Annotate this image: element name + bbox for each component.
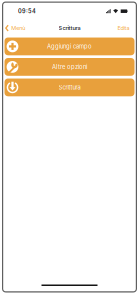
staticText: Menù — [11, 25, 25, 31]
button[interactable]: Aggiungi campo — [4, 37, 134, 55]
staticText: Aggiungi campo — [47, 43, 92, 50]
button[interactable]: Menù — [2, 23, 25, 33]
staticText: Scrittura — [58, 25, 80, 31]
button[interactable]: Altre opzioni — [4, 58, 134, 76]
staticText: Scrittura — [58, 84, 80, 91]
staticText: Edita — [117, 25, 129, 31]
staticText: Altre opzioni — [52, 63, 87, 70]
button[interactable]: Scrittura — [4, 78, 134, 96]
button[interactable]: Edita — [117, 23, 137, 33]
staticText: 09:54 — [18, 8, 36, 14]
